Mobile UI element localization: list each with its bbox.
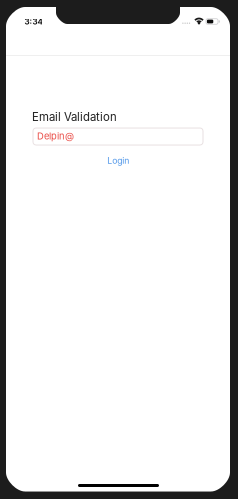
staticText: Email Validation	[32, 110, 117, 124]
staticText: Login	[107, 155, 129, 166]
button[interactable]: Login	[98, 153, 138, 167]
staticText: Delpin@	[37, 131, 74, 142]
staticText: 3:34	[24, 17, 42, 27]
